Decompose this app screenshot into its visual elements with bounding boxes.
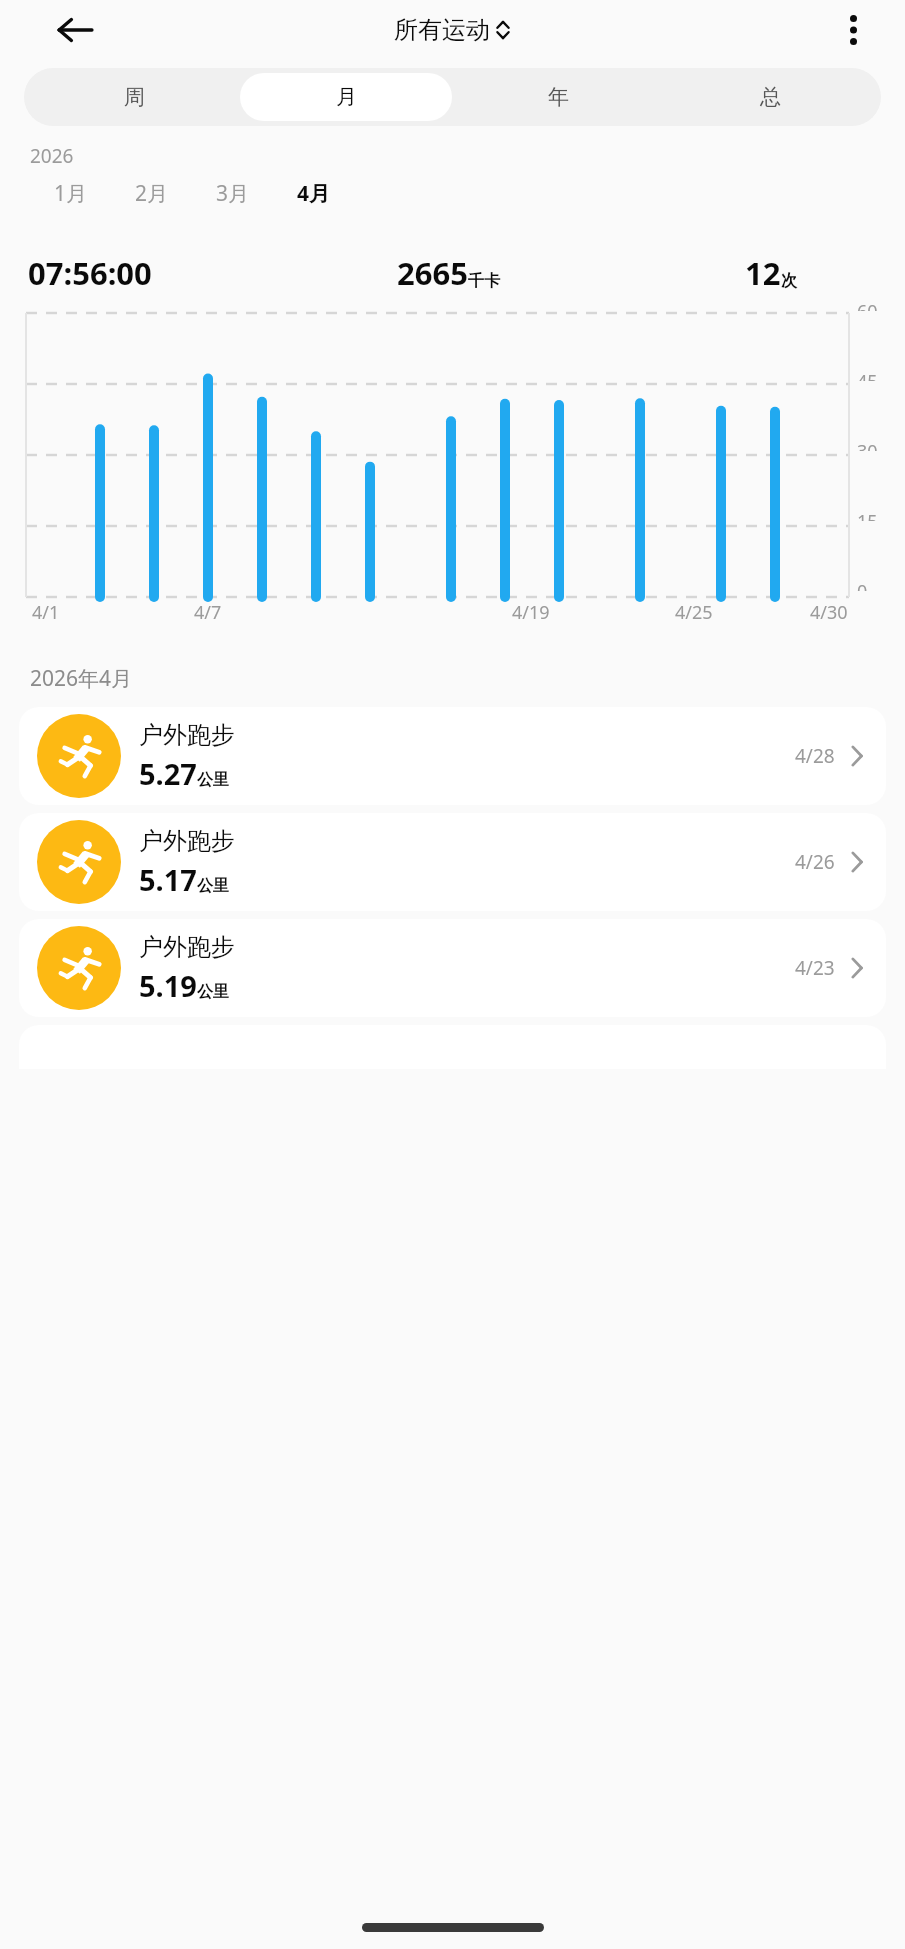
staticText: 户外跑步	[139, 826, 235, 856]
button[interactable]: 总	[664, 73, 876, 121]
button[interactable]: 户外跑步	[19, 919, 886, 1017]
staticText: 总	[760, 84, 781, 110]
staticText: 60	[857, 299, 878, 311]
staticText: 4/28	[795, 743, 835, 769]
staticText: 2026	[30, 143, 74, 169]
staticText: 月	[336, 84, 357, 110]
staticText: 1月	[54, 179, 88, 208]
staticText: 4/30	[810, 600, 848, 625]
staticText: 5.17	[139, 860, 197, 899]
button[interactable]: 4月	[273, 176, 354, 210]
staticText: 0	[857, 579, 868, 591]
staticText: 次	[781, 271, 797, 291]
staticText: 2月	[135, 179, 169, 208]
button[interactable]: Back	[50, 5, 100, 55]
staticText: 千卡	[468, 271, 500, 291]
staticText: 45	[857, 369, 878, 381]
button[interactable]: 3月	[192, 176, 273, 210]
staticText: 5.19	[139, 966, 197, 1005]
staticText: 4/1	[32, 600, 60, 625]
staticText: 2026年4月	[30, 664, 133, 693]
staticText: 公里	[197, 876, 229, 896]
button[interactable]: 2月	[111, 176, 192, 210]
staticText: 12	[745, 252, 781, 294]
staticText: 户外跑步	[139, 720, 235, 750]
staticText: 4/23	[795, 955, 835, 981]
staticText: 公里	[197, 982, 229, 1002]
staticText: 4/26	[795, 849, 835, 875]
button[interactable]: 户外跑步	[19, 813, 886, 911]
staticText: 4月	[297, 179, 331, 208]
button[interactable]: 年	[452, 73, 664, 121]
staticText: 3月	[216, 179, 250, 208]
button[interactable]: 所有运动	[394, 15, 511, 45]
button[interactable]: 周	[29, 73, 240, 121]
staticText: 5.27	[139, 754, 197, 793]
button[interactable]: 月	[240, 73, 452, 121]
staticText: 4/19	[512, 600, 550, 625]
staticText: 户外跑步	[139, 932, 235, 962]
button[interactable]: 1月	[30, 176, 111, 210]
staticText: 所有运动	[394, 15, 490, 45]
staticText: 30	[857, 439, 878, 451]
staticText: 周	[124, 84, 145, 110]
staticText: 年	[548, 84, 569, 110]
staticText: 07:56:00	[28, 252, 152, 294]
button[interactable]: More options	[829, 6, 877, 54]
staticText: 4/25	[675, 600, 713, 625]
staticText: 公里	[197, 770, 229, 790]
staticText: 4/7	[194, 600, 222, 625]
staticText: 2665	[397, 252, 468, 294]
button[interactable]: 户外跑步	[19, 707, 886, 805]
staticText: 15	[857, 509, 878, 521]
